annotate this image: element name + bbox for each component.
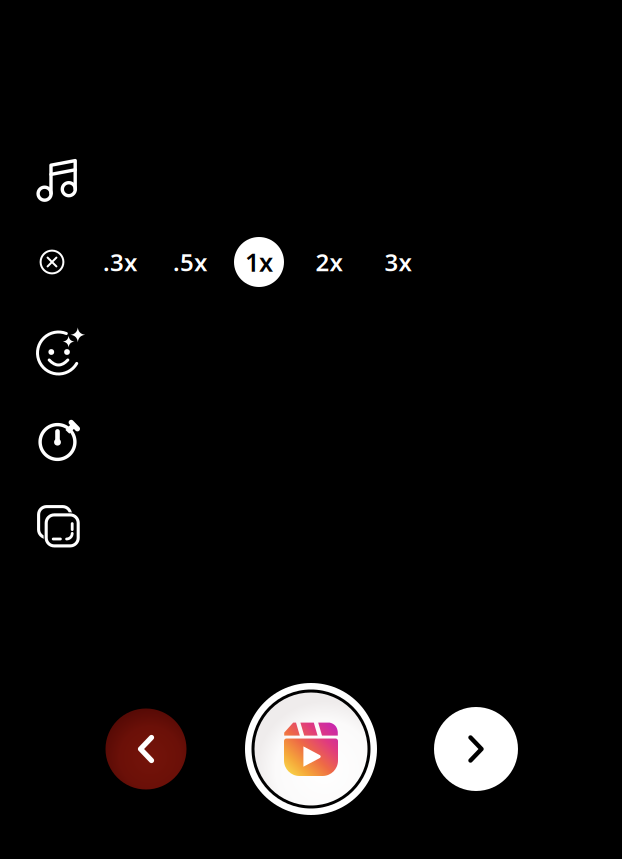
staticText: 1x [245,245,273,279]
staticText: .3x [103,246,137,278]
button[interactable]: 2x [299,233,359,291]
button[interactable]: Align [37,505,83,549]
staticText: 2x [315,246,342,278]
button[interactable]: Effects [36,329,84,377]
button[interactable]: .5x [160,233,220,291]
staticText: .5x [173,246,207,278]
button[interactable]: Audio [36,158,80,202]
button[interactable]: .3x [90,233,150,291]
button[interactable]: Timer [38,420,82,462]
button[interactable]: Previous [100,703,192,795]
button[interactable]: 1x [229,233,289,291]
button[interactable]: 3x [368,233,428,291]
button[interactable]: Close [26,236,78,288]
button[interactable]: Next [429,702,523,796]
staticText: 3x [384,246,411,278]
button[interactable]: Record [241,679,381,819]
